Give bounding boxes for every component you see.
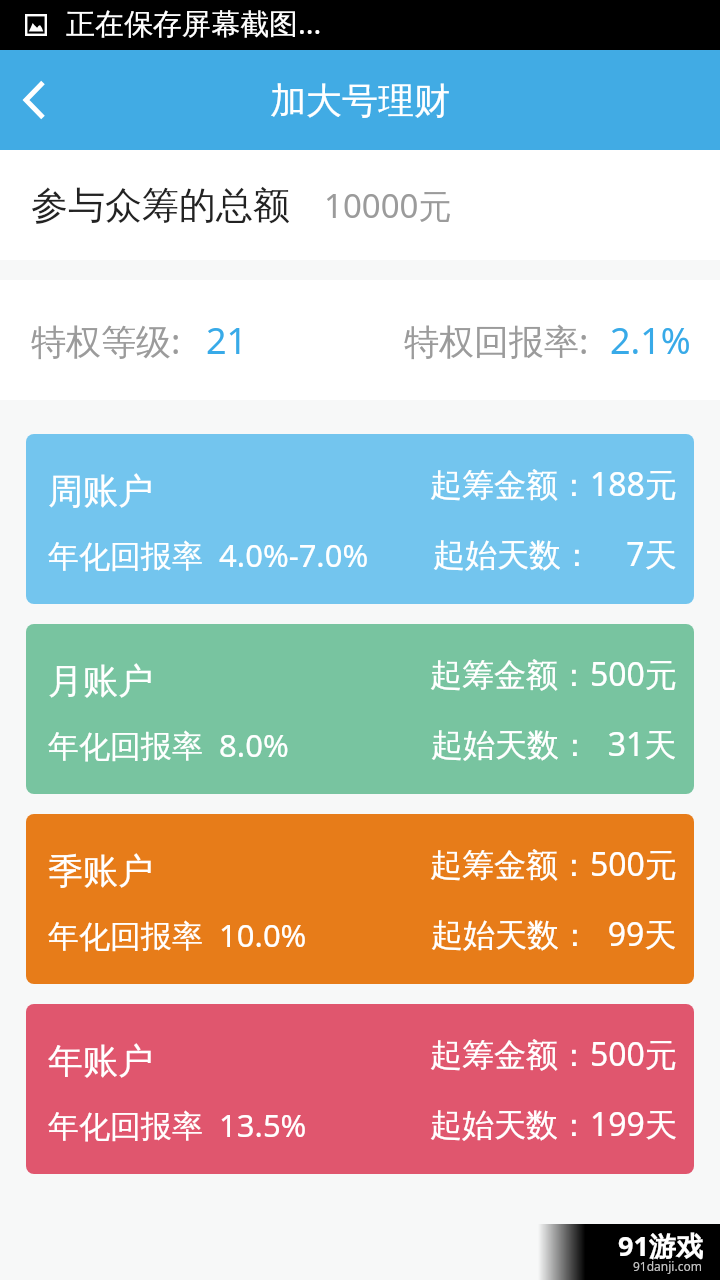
staticText: 年化回报率 13.5% [48,1104,307,1146]
staticText: 10000元 [324,183,452,228]
staticText: 91游戏 [618,1227,703,1264]
staticText: 起始天数： 99天 [431,912,677,956]
staticText: 正在保存屏幕截图... [66,3,322,43]
staticText: 特权等级: [31,317,181,365]
staticText: 起筹金额：500元 [430,1032,677,1076]
staticText: 月账户 [48,659,153,703]
button[interactable]: Back [0,50,68,150]
staticText: 年化回报率 8.0% [48,724,289,766]
staticText: 年化回报率 10.0% [48,914,307,956]
button[interactable]: 周账户 [26,434,694,604]
staticText: 起筹金额：500元 [430,842,677,886]
staticText: 起筹金额：500元 [430,652,677,696]
staticText: 参与众筹的总额 [31,182,290,229]
staticText: 91danji.com [633,1258,702,1274]
staticText: 起始天数： 31天 [431,722,677,766]
staticText: 年化回报率 4.0%-7.0% [48,534,369,576]
staticText: 周账户 [48,469,153,513]
staticText: 年账户 [48,1039,153,1083]
staticText: 起始天数：199天 [430,1102,677,1146]
button[interactable]: 年账户 [26,1004,694,1174]
staticText: 21 [206,316,248,365]
staticText: 特权回报率: [404,317,589,365]
staticText: 起筹金额：188元 [430,462,677,506]
button[interactable]: 月账户 [26,624,694,794]
staticText: 起始天数： 7天 [433,532,677,576]
staticText: 加大号理财 [270,78,450,123]
staticText: 季账户 [48,849,153,893]
staticText: 2.1% [610,316,691,365]
button[interactable]: 季账户 [26,814,694,984]
